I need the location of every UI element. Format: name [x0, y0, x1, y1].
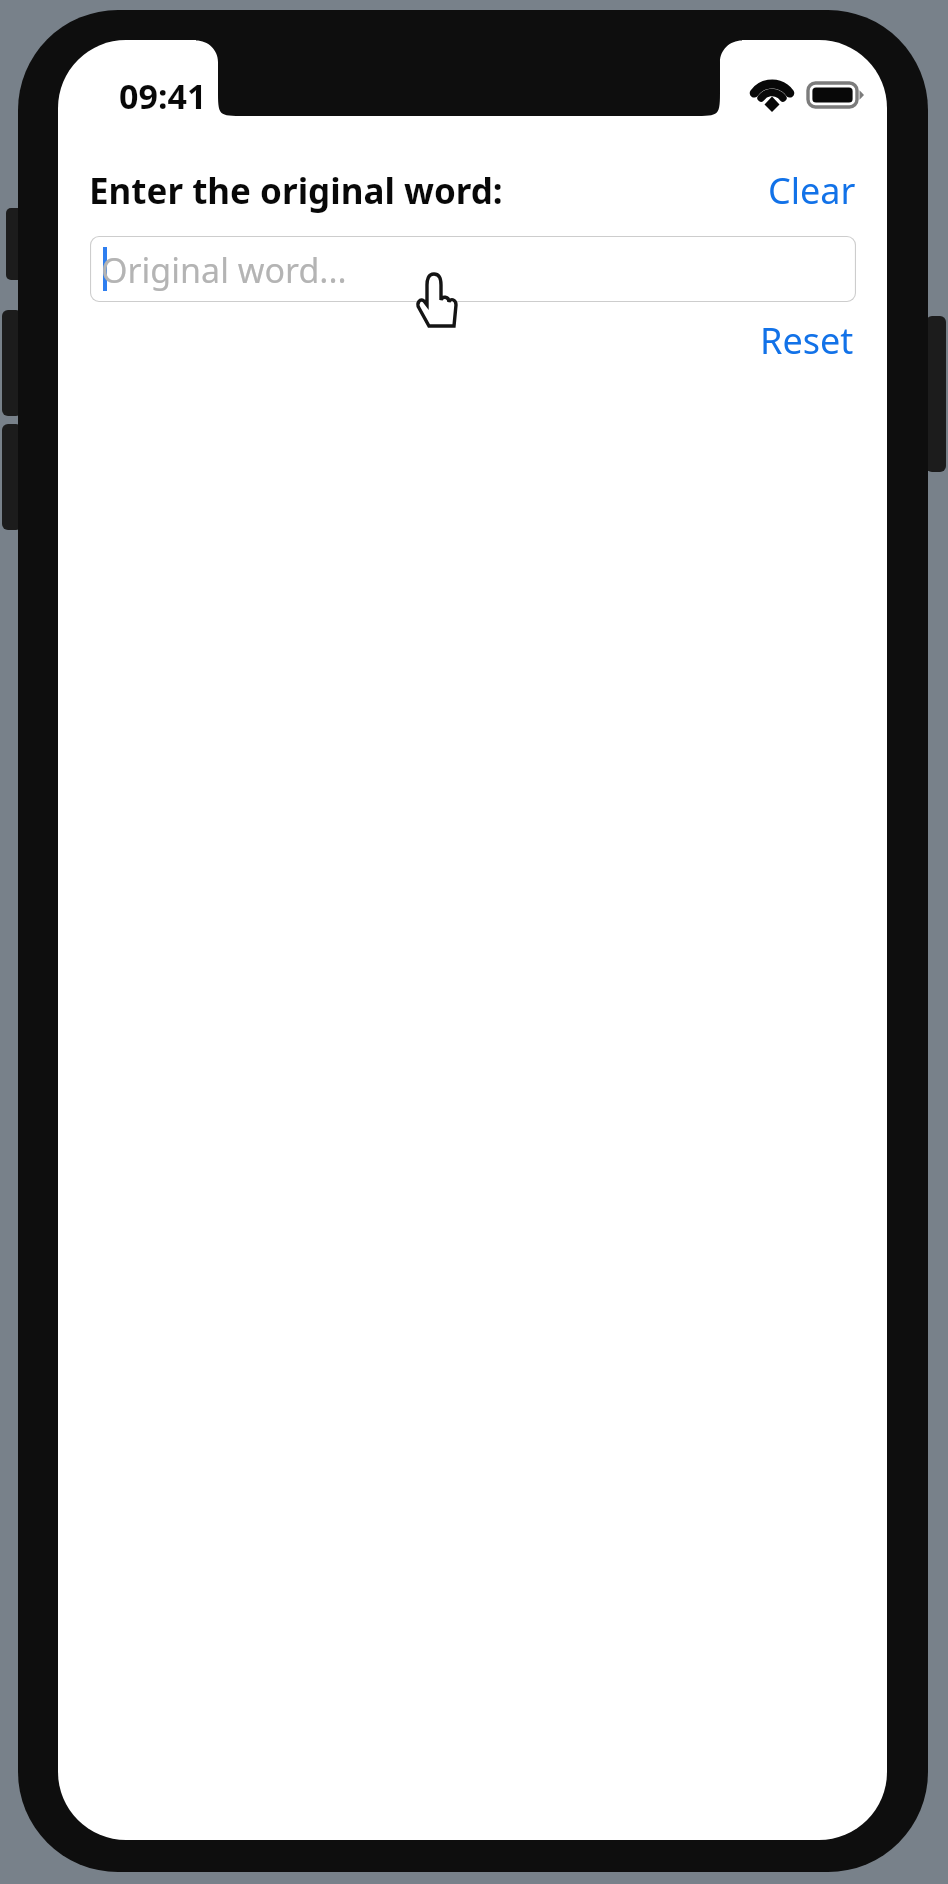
staticText: Original word...: [101, 247, 347, 293]
other: Ring silent switch: [6, 208, 24, 280]
button[interactable]: Original word...: [90, 236, 856, 302]
button[interactable]: Reset: [760, 312, 860, 364]
staticText: 09:41: [119, 73, 207, 119]
staticText: Clear: [768, 166, 856, 215]
other: Volume down: [2, 424, 22, 530]
staticText: Enter the original word:: [89, 167, 503, 215]
button[interactable]: Clear: [768, 162, 860, 214]
staticText: Reset: [760, 316, 854, 365]
other: Power: [926, 316, 946, 472]
other: Volume up: [2, 310, 22, 416]
